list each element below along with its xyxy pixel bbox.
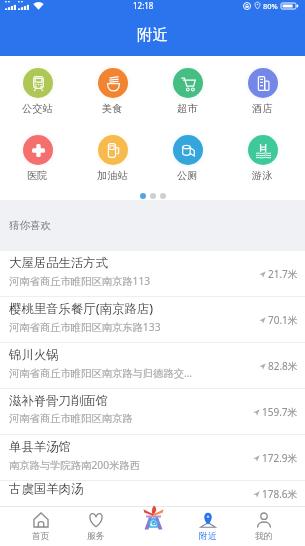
button[interactable]: 加油站	[75, 131, 150, 182]
staticText: 美食	[102, 102, 123, 115]
button[interactable]: 医院	[0, 131, 75, 182]
staticText: 单县羊汤馆	[9, 439, 71, 455]
staticText: 服务	[87, 531, 105, 542]
button[interactable]: 大屋居品生活方式	[0, 251, 305, 297]
staticText: 南京路与学院路南200米路西	[9, 458, 140, 472]
staticText: 锦川火锅	[9, 347, 59, 363]
button[interactable]: 滋补脊骨刀削面馆	[0, 389, 305, 435]
button[interactable]: 游泳	[225, 131, 300, 182]
staticText: 河南省商丘市睢阳区南京路113	[9, 274, 151, 288]
staticText: 82.8米	[268, 359, 298, 373]
staticText: 游泳	[252, 169, 273, 182]
staticText: 21.7米	[268, 267, 298, 281]
staticText: 70.1米	[268, 313, 298, 327]
staticText: 我的	[255, 531, 273, 542]
staticText: 河南省商丘市睢阳区南京东路133	[9, 320, 161, 334]
staticText: 滋补脊骨刀削面馆	[9, 393, 109, 409]
staticText: 古虞国羊肉汤	[9, 481, 84, 497]
staticText: 12:18	[133, 0, 154, 11]
button[interactable]: 首页	[13, 506, 68, 546]
staticText: 酒店	[252, 102, 273, 115]
button[interactable]: 樱桃里音乐餐厅(南京路店)	[0, 297, 305, 343]
staticText: 公交站	[22, 102, 53, 115]
button[interactable]: 我的	[236, 506, 292, 546]
button[interactable]: 公交站	[0, 64, 75, 115]
staticText: 80%	[263, 1, 278, 11]
staticText: 猜你喜欢	[9, 219, 51, 232]
button[interactable]: 古虞国羊肉汤	[0, 481, 305, 506]
button[interactable]: 锦川火锅	[0, 343, 305, 389]
staticText: 159.7米	[262, 405, 298, 419]
button[interactable]: 公厕	[150, 131, 225, 182]
staticText: 大屋居品生活方式	[9, 255, 109, 271]
button[interactable]: 美食	[75, 64, 150, 115]
button[interactable]: 附近	[180, 506, 236, 546]
staticText: 医院	[27, 169, 48, 182]
staticText: 加油站	[97, 169, 128, 182]
staticText: 公厕	[177, 169, 198, 182]
button[interactable]: 单县羊汤馆	[0, 435, 305, 481]
staticText: 附近	[137, 25, 168, 45]
staticText: 超市	[177, 102, 198, 115]
staticText: 樱桃里音乐餐厅(南京路店)	[9, 300, 154, 317]
button[interactable]: 服务	[68, 506, 124, 546]
button[interactable]: 扫一扫	[124, 506, 180, 546]
button[interactable]: 超市	[150, 64, 225, 115]
staticText: 河南省商丘市睢阳区南京路与归德路交…	[9, 366, 193, 380]
staticText: 首页	[32, 531, 50, 542]
staticText: 河南省商丘市睢阳区南京路	[9, 412, 133, 425]
staticText: 附近	[199, 531, 217, 542]
staticText: 172.9米	[262, 451, 298, 465]
staticText: 178.6米	[262, 487, 298, 501]
button[interactable]: 酒店	[225, 64, 300, 115]
